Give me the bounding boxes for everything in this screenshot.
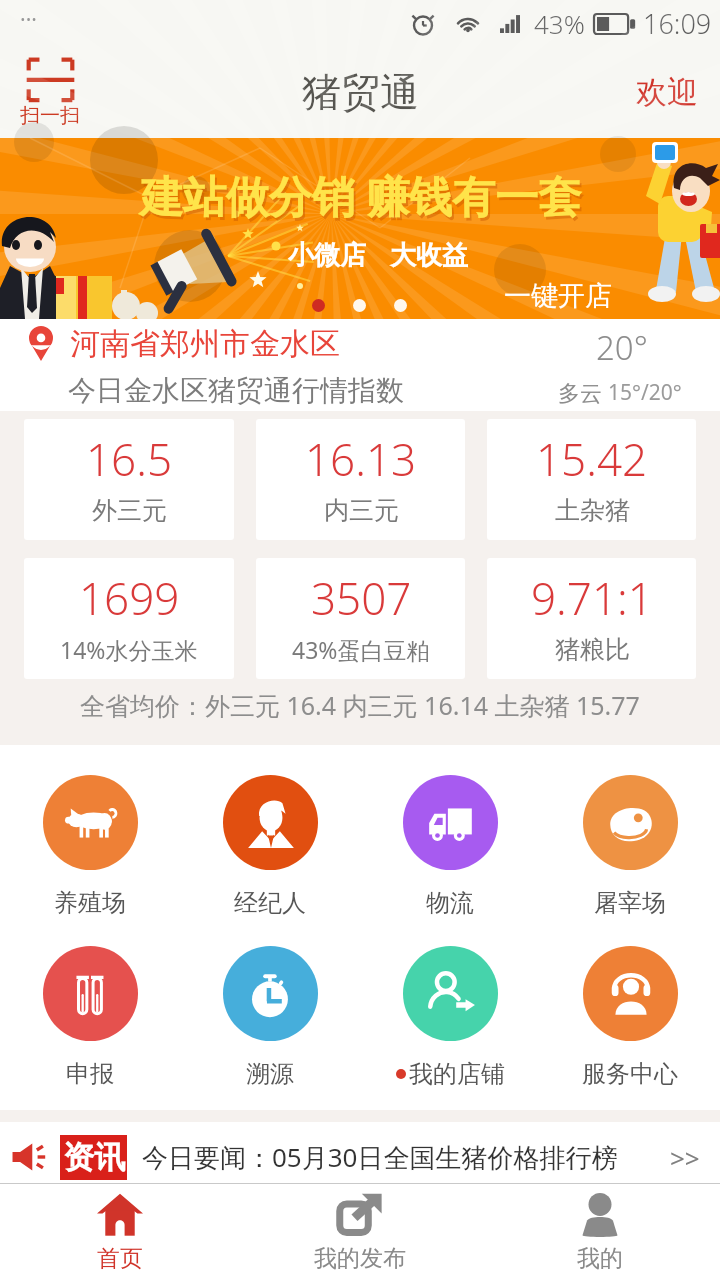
staticText: 养殖场 bbox=[54, 888, 126, 918]
staticText: 16.13 bbox=[305, 429, 417, 489]
staticText: 我的 bbox=[577, 1244, 623, 1273]
staticText: 屠宰场 bbox=[594, 888, 666, 918]
staticText: 我的店铺 bbox=[409, 1059, 505, 1089]
staticText: 资讯 bbox=[63, 1138, 125, 1177]
staticText: 猪贸通 bbox=[302, 68, 419, 117]
button[interactable]: 经纪人 bbox=[180, 775, 360, 918]
staticText: 14%水分玉米 bbox=[60, 634, 198, 665]
staticText: 1699 bbox=[79, 568, 180, 628]
button[interactable]: 15.42 bbox=[487, 419, 696, 540]
staticText: 扫一扫 bbox=[20, 103, 80, 128]
staticText: 15.42 bbox=[536, 429, 648, 489]
staticText: 今日要闻：05月30日全国生猪价格排行榜 bbox=[142, 1139, 618, 1175]
staticText: 申报 bbox=[66, 1059, 114, 1089]
button[interactable]: 3507 bbox=[256, 558, 465, 679]
button[interactable]: 屠宰场 bbox=[540, 775, 720, 918]
button[interactable]: 我的 bbox=[480, 1184, 720, 1280]
staticText: 猪粮比 bbox=[555, 634, 630, 665]
button[interactable]: 扫一扫 Scan bbox=[12, 53, 88, 132]
staticText: 建站做分销 赚钱有一套 bbox=[142, 169, 584, 228]
button[interactable]: 我的店铺 bbox=[360, 946, 540, 1089]
button[interactable]: 9.71:1 bbox=[487, 558, 696, 679]
staticText: 全省均价：外三元 16.4 内三元 16.14 土杂猪 15.77 bbox=[80, 688, 640, 722]
button[interactable]: 建站做分销 赚钱有一套 bbox=[0, 138, 720, 319]
button[interactable]: 养殖场 bbox=[0, 775, 180, 918]
staticText: 16:09 bbox=[643, 5, 712, 42]
staticText: 9.71:1 bbox=[531, 568, 653, 628]
staticText: 多云 bbox=[558, 377, 608, 407]
staticText: 经纪人 bbox=[234, 888, 306, 918]
staticText: 建站做分销 赚钱有一套 bbox=[140, 166, 582, 225]
staticText: 15°/20° bbox=[608, 378, 682, 407]
staticText: 河南省郑州市金水区 bbox=[70, 325, 340, 363]
button[interactable]: 服务中心 bbox=[540, 946, 720, 1089]
staticText: 3507 bbox=[311, 568, 412, 628]
staticText: 小微店 bbox=[288, 239, 366, 272]
button[interactable]: 1699 bbox=[24, 558, 234, 679]
button[interactable]: 16.13 bbox=[256, 419, 465, 540]
staticText: 一键开店 bbox=[504, 279, 612, 313]
button[interactable]: 资讯 bbox=[0, 1122, 720, 1183]
staticText: 16.5 bbox=[86, 429, 173, 489]
button[interactable]: 我的发布 bbox=[240, 1184, 480, 1280]
button[interactable]: 物流 bbox=[360, 775, 540, 918]
staticText: 43%蛋白豆粕 bbox=[292, 634, 430, 665]
staticText: 物流 bbox=[426, 888, 474, 918]
staticText: 土杂猪 bbox=[555, 495, 630, 526]
staticText: 首页 bbox=[97, 1244, 143, 1273]
staticText: 20° bbox=[596, 325, 648, 370]
staticText: 外三元 bbox=[92, 495, 167, 526]
staticText: 43% bbox=[534, 6, 585, 41]
staticText: 大收益 bbox=[390, 239, 468, 272]
staticText: 我的发布 bbox=[314, 1244, 406, 1273]
button[interactable]: 申报 bbox=[0, 946, 180, 1089]
staticText: 服务中心 bbox=[582, 1059, 678, 1089]
button[interactable]: 溯源 bbox=[180, 946, 360, 1089]
button[interactable]: 欢迎 bbox=[614, 63, 720, 122]
staticText: 内三元 bbox=[324, 495, 399, 526]
staticText: 今日金水区猪贸通行情指数 bbox=[68, 373, 404, 408]
staticText: ··· bbox=[20, 5, 37, 34]
staticText: 溯源 bbox=[246, 1059, 294, 1089]
button[interactable]: 首页 bbox=[0, 1184, 240, 1280]
button[interactable]: 16.5 bbox=[24, 419, 234, 540]
staticText: >> bbox=[670, 1140, 700, 1175]
